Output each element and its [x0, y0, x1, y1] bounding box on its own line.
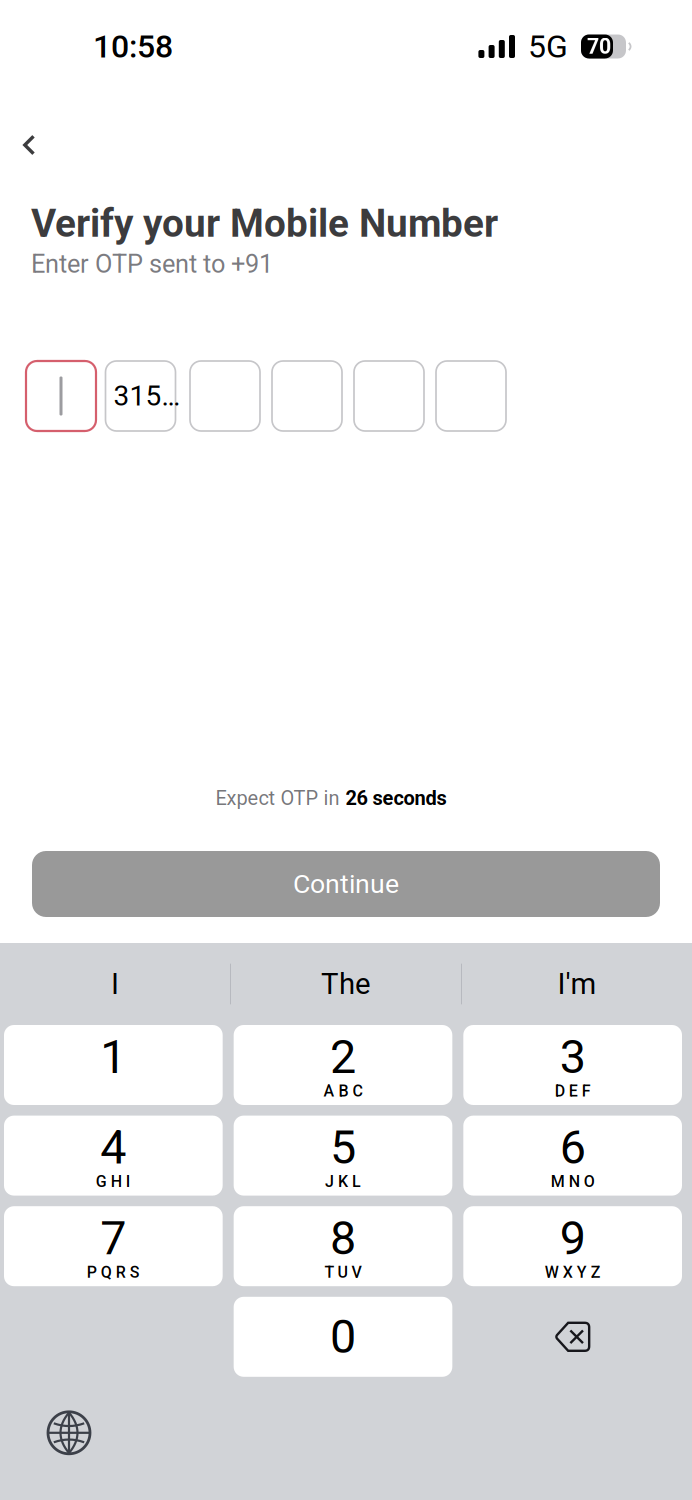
- button[interactable]: Next keyboard: [44, 1408, 94, 1458]
- staticText: G H I: [96, 1172, 131, 1191]
- staticText: Enter OTP sent to +91: [31, 249, 273, 279]
- staticText: 6: [560, 1120, 586, 1175]
- button[interactable]: OTP digit: [190, 361, 260, 431]
- staticText: A B C: [323, 1082, 362, 1100]
- button[interactable]: Continue: [32, 851, 660, 917]
- staticText: I: [111, 967, 119, 1001]
- button[interactable]: I: [0, 943, 230, 1025]
- button[interactable]: 5: [234, 1116, 452, 1196]
- staticText: J K L: [325, 1172, 361, 1191]
- staticText: 70: [587, 34, 611, 59]
- button[interactable]: 8: [234, 1206, 452, 1286]
- button[interactable]: OTP digit: [354, 361, 424, 431]
- staticText: 1: [100, 1030, 126, 1084]
- staticText: 3: [560, 1030, 586, 1084]
- button[interactable]: Delete: [463, 1297, 682, 1377]
- button[interactable]: 6: [463, 1116, 682, 1196]
- staticText: 2: [330, 1030, 356, 1084]
- button[interactable]: The: [231, 943, 461, 1025]
- staticText: 315…: [113, 380, 180, 412]
- staticText: I'm: [557, 967, 596, 1001]
- button[interactable]: 2: [234, 1025, 452, 1105]
- staticText: 9: [560, 1211, 586, 1266]
- button[interactable]: Back: [0, 96, 54, 169]
- staticText: The: [321, 967, 371, 1001]
- button[interactable]: 7: [4, 1206, 223, 1286]
- staticText: W X Y Z: [545, 1263, 601, 1282]
- button[interactable]: OTP digit: [272, 361, 342, 431]
- button[interactable]: OTP digit: [108, 361, 178, 431]
- staticText: 4: [100, 1120, 126, 1175]
- staticText: 7: [100, 1211, 126, 1266]
- staticText: 0: [330, 1309, 356, 1364]
- staticText: P Q R S: [87, 1263, 140, 1282]
- button[interactable]: 1: [4, 1025, 223, 1105]
- button[interactable]: 4: [4, 1116, 223, 1196]
- staticText: 8: [330, 1211, 356, 1266]
- staticText: D E F: [555, 1082, 591, 1100]
- button[interactable]: 0: [234, 1297, 452, 1377]
- staticText: 5G: [528, 28, 568, 65]
- button[interactable]: OTP digit: [26, 361, 96, 431]
- staticText: Continue: [293, 868, 399, 900]
- button[interactable]: OTP digit: [436, 361, 506, 431]
- button[interactable]: I'm: [462, 943, 692, 1025]
- button[interactable]: 3: [463, 1025, 682, 1105]
- staticText: M N O: [551, 1172, 595, 1191]
- staticText: Expect OTP in: [215, 787, 339, 810]
- staticText: T U V: [324, 1263, 361, 1282]
- staticText: 5: [330, 1120, 356, 1175]
- button[interactable]: 9: [463, 1206, 682, 1286]
- staticText: Verify your Mobile Number: [31, 201, 498, 246]
- staticText: 26 seconds: [345, 787, 446, 810]
- staticText: 10:58: [93, 28, 173, 65]
